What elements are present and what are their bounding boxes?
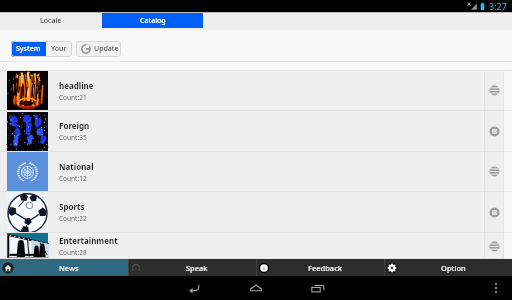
staticText: System <box>16 44 41 54</box>
button[interactable]: Back <box>163 276 225 300</box>
staticText: Count:21 <box>59 93 87 102</box>
button[interactable]: Row options <box>485 192 503 232</box>
button[interactable]: Speak <box>128 259 256 276</box>
staticText: Sports <box>59 201 85 212</box>
staticText: Update <box>94 44 119 54</box>
button[interactable]: Foreign <box>0 111 512 151</box>
button[interactable]: Row options <box>485 152 503 191</box>
button[interactable]: Update <box>76 41 121 57</box>
staticText: Locale <box>40 16 62 26</box>
staticText: Option <box>441 263 466 273</box>
staticText: Catalog <box>140 16 166 26</box>
staticText: Speak <box>186 263 208 273</box>
staticText: National <box>59 161 94 172</box>
staticText: News <box>59 263 79 273</box>
button[interactable]: Recent apps <box>287 276 349 300</box>
button[interactable]: Feedback <box>256 259 384 276</box>
staticText: Count:35 <box>59 133 87 142</box>
button[interactable]: Home <box>225 276 287 300</box>
staticText: Count:28 <box>59 248 87 257</box>
button[interactable]: More options <box>489 276 503 300</box>
staticText: Foreign <box>59 120 90 131</box>
button[interactable]: Your <box>46 41 72 57</box>
button[interactable]: Entertainment <box>0 233 512 259</box>
button[interactable]: Row options <box>485 111 503 151</box>
button[interactable]: National <box>0 152 512 191</box>
button[interactable]: Catalog <box>102 13 203 28</box>
button[interactable]: Option <box>384 259 512 276</box>
staticText: Entertainment <box>59 235 118 246</box>
staticText: Count:22 <box>59 214 87 223</box>
staticText: headline <box>59 80 94 91</box>
button[interactable]: Row options <box>485 233 503 259</box>
staticText: Feedback <box>308 263 343 273</box>
button[interactable]: Locale <box>0 13 102 28</box>
button[interactable]: Sports <box>0 192 512 232</box>
button[interactable]: headline <box>0 71 512 110</box>
button[interactable]: System <box>11 41 46 57</box>
staticText: Your <box>51 44 67 54</box>
button[interactable]: News <box>0 259 128 276</box>
button[interactable]: Row options <box>485 71 503 110</box>
staticText: 3:27 <box>489 0 507 12</box>
staticText: Count:12 <box>59 174 87 183</box>
